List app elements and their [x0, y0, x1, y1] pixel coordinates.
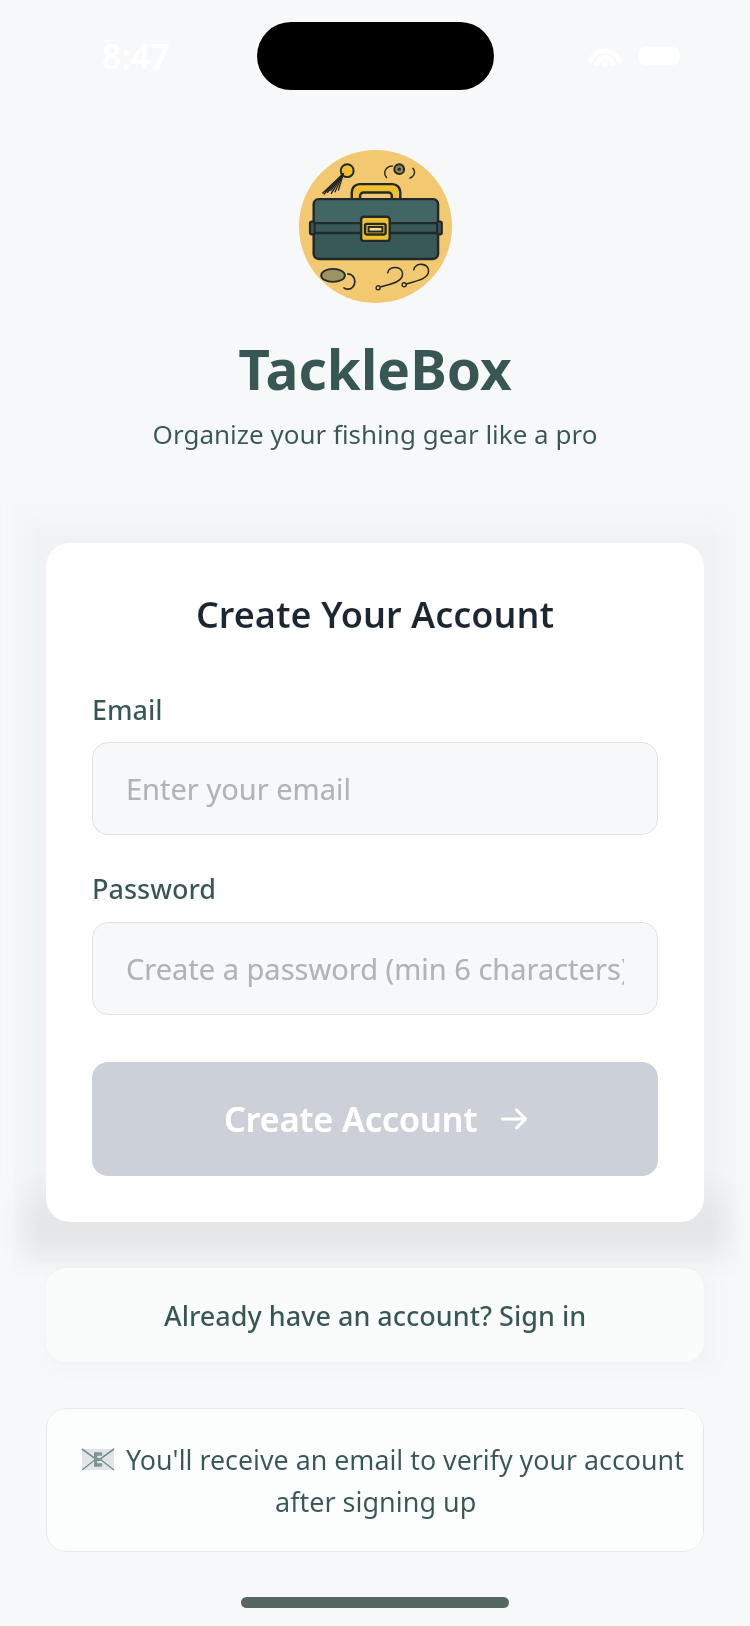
staticText: Create Account [224, 1096, 478, 1142]
staticText: Enter your email [126, 769, 351, 808]
button[interactable]: Create Account [92, 1062, 658, 1176]
staticText: Already have an account? Sign in [164, 1297, 587, 1334]
other: Continue [501, 1107, 527, 1131]
staticText: Create a password (min 6 characters) [126, 949, 624, 988]
staticText: after signing up [275, 1483, 477, 1520]
button[interactable]: Create a password (min 6 characters) [92, 922, 658, 1015]
button[interactable]: Already have an account? Sign in [46, 1268, 704, 1362]
other: Wi-Fi [589, 45, 621, 67]
other: Email verification [82, 1449, 114, 1470]
staticText: Email [92, 691, 163, 728]
staticText: Password [92, 870, 217, 907]
staticText: TackleBox [0, 331, 750, 406]
staticText: You'll receive an email to verify your a… [126, 1441, 684, 1478]
staticText: Create Your Account [92, 590, 658, 639]
button[interactable]: Enter your email [92, 742, 658, 835]
staticText: 8:47 [102, 33, 170, 79]
other: TackleBox logo [299, 150, 452, 303]
staticText: Organize your fishing gear like a pro [0, 416, 750, 451]
